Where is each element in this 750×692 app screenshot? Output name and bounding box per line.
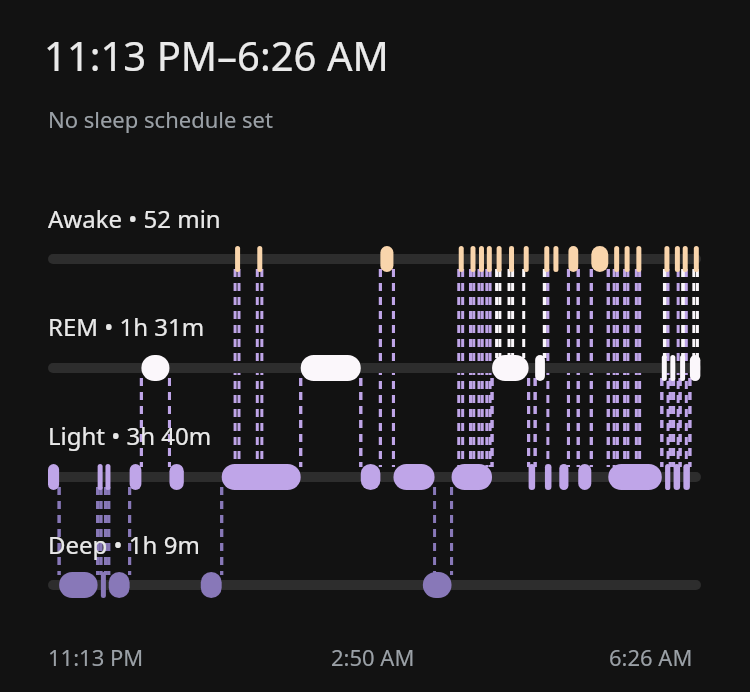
staticText: Awake • 52 min bbox=[48, 202, 221, 235]
staticText: 11:13 PM bbox=[48, 642, 144, 672]
staticText: REM • 1h 31m bbox=[48, 310, 205, 343]
staticText: No sleep schedule set bbox=[48, 104, 273, 134]
button[interactable]: Sleep stages hypnogram bbox=[0, 0, 750, 692]
staticText: Light • 3h 40m bbox=[48, 419, 212, 452]
staticText: Deep • 1h 9m bbox=[48, 528, 200, 561]
staticText: 6:26 AM bbox=[609, 642, 693, 672]
staticText: 2:50 AM bbox=[331, 642, 415, 672]
staticText: 11:13 PM–6:26 AM bbox=[44, 28, 389, 82]
